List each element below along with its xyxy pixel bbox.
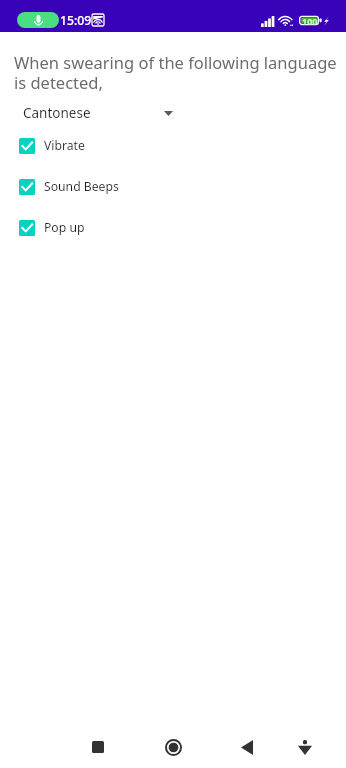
staticText: Pop up xyxy=(44,219,85,236)
button[interactable]: Sound Beeps xyxy=(0,178,346,195)
button[interactable]: Hide keyboard xyxy=(288,730,322,764)
button[interactable]: Back xyxy=(230,730,264,764)
staticText: Vibrate xyxy=(44,137,85,154)
staticText: Sound Beeps xyxy=(44,178,119,195)
button[interactable]: Recent apps xyxy=(81,730,115,764)
staticText: 15:09 xyxy=(60,12,92,29)
button[interactable]: Cantonese xyxy=(23,104,173,122)
button[interactable]: Home xyxy=(156,730,190,764)
staticText: 100 xyxy=(302,15,318,27)
button[interactable]: Vibrate xyxy=(0,137,346,154)
staticText: Cantonese xyxy=(23,104,91,122)
staticText: When swearing of the following language … xyxy=(14,51,338,94)
button[interactable]: Microphone active xyxy=(17,12,59,28)
button[interactable]: Pop up xyxy=(0,219,346,236)
